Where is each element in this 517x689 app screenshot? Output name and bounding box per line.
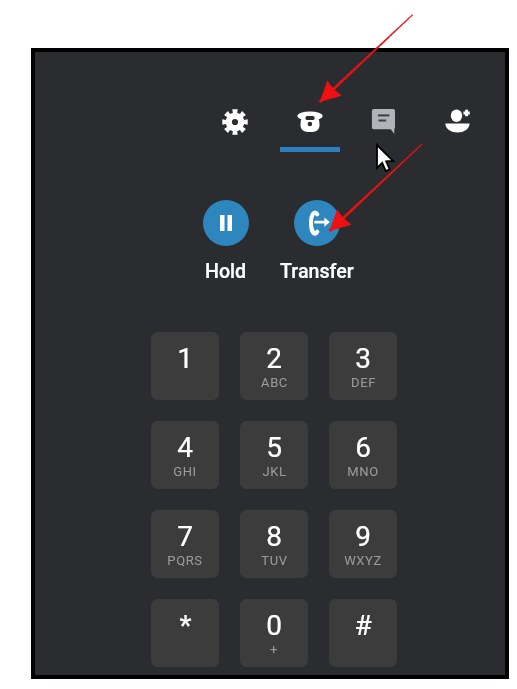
staticText: 7 — [177, 520, 193, 553]
button[interactable]: Dialpad — [288, 100, 332, 144]
button[interactable]: Settings — [213, 100, 257, 144]
staticText: PQRS — [167, 553, 203, 568]
button[interactable]: * — [151, 599, 219, 667]
button[interactable]: Transfer — [257, 200, 377, 290]
staticText: GHI — [173, 464, 197, 479]
staticText: # — [354, 609, 372, 642]
button[interactable]: Messages — [362, 100, 406, 144]
staticText: TUV — [261, 553, 288, 568]
staticText: DEF — [351, 375, 376, 390]
button[interactable]: 2 — [240, 332, 308, 400]
staticText: + — [270, 642, 278, 657]
button[interactable]: 8 — [240, 510, 308, 578]
staticText: * — [179, 609, 192, 642]
button[interactable]: 0 — [240, 599, 308, 667]
staticText: 0 — [266, 609, 282, 642]
button[interactable]: 5 — [240, 421, 308, 489]
staticText: 6 — [355, 431, 371, 464]
staticText: ABC — [261, 375, 288, 390]
staticText: 1 — [177, 342, 193, 375]
button[interactable]: 1 — [151, 332, 219, 400]
staticText: 3 — [355, 342, 371, 375]
button[interactable]: 7 — [151, 510, 219, 578]
button[interactable]: 4 — [151, 421, 219, 489]
staticText: 2 — [266, 342, 282, 375]
staticText: Hold — [205, 260, 247, 283]
button[interactable]: Hold — [166, 200, 286, 290]
staticText: JKL — [262, 464, 287, 479]
staticText: Transfer — [280, 260, 354, 283]
staticText: 4 — [177, 431, 193, 464]
staticText: 8 — [266, 520, 282, 553]
button[interactable]: Add contact — [438, 100, 482, 144]
staticText: MNO — [347, 464, 379, 479]
button[interactable]: # — [329, 599, 397, 667]
button[interactable]: 9 — [329, 510, 397, 578]
button[interactable]: 3 — [329, 332, 397, 400]
button[interactable]: 6 — [329, 421, 397, 489]
staticText: WXYZ — [344, 553, 382, 568]
staticText: 5 — [266, 431, 282, 464]
staticText: 9 — [355, 520, 371, 553]
